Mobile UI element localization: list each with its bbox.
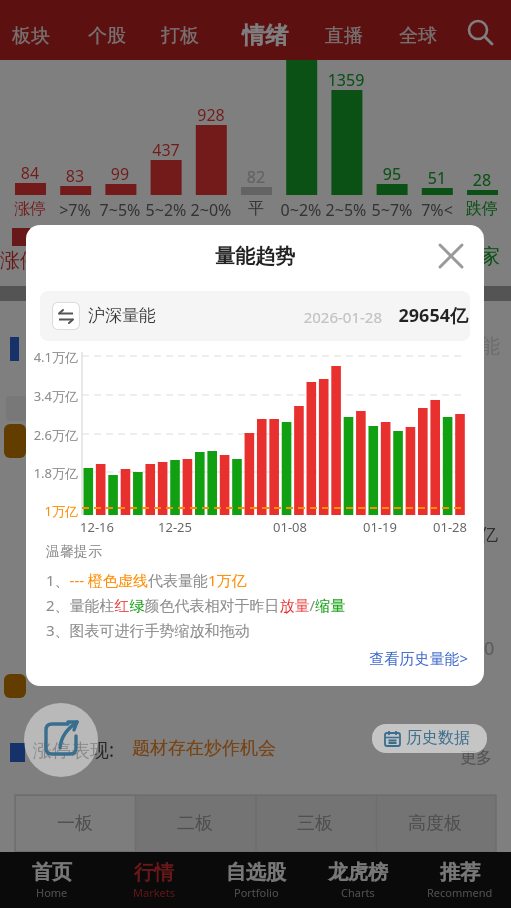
staticText: 二板	[177, 812, 213, 835]
staticText: 82	[226, 166, 286, 188]
staticText: 更多	[460, 748, 510, 768]
staticText: 全球	[399, 24, 437, 48]
staticText: 自选股	[226, 860, 286, 885]
staticText: 亿	[480, 524, 510, 547]
staticText: 一板	[57, 812, 93, 835]
staticText: 3.4万亿	[26, 387, 78, 405]
button[interactable]: 三板	[255, 795, 375, 852]
button[interactable]	[424, 230, 480, 286]
button[interactable]: 自选股	[205, 852, 307, 908]
button[interactable]: 一板	[15, 795, 135, 852]
staticText: Markets	[133, 885, 176, 900]
button[interactable]: 高度板	[375, 795, 495, 852]
staticText: 7~5%	[90, 199, 150, 221]
button[interactable]: 打板	[150, 20, 210, 52]
button[interactable]	[460, 12, 500, 52]
staticText: 2026-01-28	[282, 307, 382, 327]
staticText: 情绪	[242, 21, 288, 50]
button[interactable]: 题材存在炒作机会	[132, 737, 352, 760]
staticText: 12-16	[67, 518, 127, 536]
staticText: 0~2%	[271, 199, 331, 221]
staticText: 查看历史量能>	[346, 648, 468, 668]
button[interactable]: 首页	[0, 852, 103, 908]
button[interactable]: 情绪	[229, 15, 301, 55]
button[interactable]: 历史数据	[372, 724, 487, 753]
staticText: 沪深量能	[88, 305, 208, 326]
staticText: 0	[484, 636, 511, 661]
staticText: 推荐	[440, 860, 480, 885]
staticText: 温馨提示	[46, 543, 246, 561]
staticText: 高度板	[408, 812, 462, 835]
staticText: 2~0%	[181, 199, 241, 221]
staticText: 行情	[134, 860, 174, 885]
staticText: 4.1万亿	[26, 348, 78, 366]
staticText: 84	[0, 162, 60, 184]
staticText: 直播	[325, 24, 363, 48]
staticText: 量能趋势	[26, 244, 484, 269]
staticText: 跌停	[452, 199, 511, 219]
staticText: 12-25	[145, 518, 205, 536]
staticText: 2、量能柱红绿颜色代表相对于昨日放量/缩量	[46, 595, 346, 615]
staticText: 3、图表可进行手势缩放和拖动	[46, 620, 446, 640]
button[interactable]: 推荐	[409, 852, 511, 908]
staticText: 涨停	[0, 199, 60, 219]
staticText: 1359	[316, 69, 376, 91]
staticText: 437	[136, 139, 196, 161]
button[interactable]: 沪深量能	[40, 291, 470, 341]
staticText: 99	[90, 163, 150, 185]
staticText: 01-28	[420, 518, 480, 536]
staticText: 板块	[12, 24, 50, 48]
staticText: 95	[362, 163, 422, 185]
button[interactable]: 直播	[314, 20, 374, 52]
staticText: >7%	[45, 199, 105, 221]
staticText: 家	[480, 244, 510, 269]
staticText: 首页	[32, 860, 72, 885]
staticText: 能	[480, 334, 510, 359]
button[interactable]: 全球	[388, 20, 448, 52]
staticText: Recommend	[427, 885, 493, 900]
staticText: 1、--- 橙色虚线代表量能1万亿	[46, 570, 247, 590]
button[interactable]: 查看历史量能>	[346, 648, 468, 674]
staticText: 2.6万亿	[26, 426, 78, 444]
staticText: 01-08	[260, 518, 320, 536]
staticText: 1.8万亿	[26, 464, 78, 482]
staticText: 三板	[297, 812, 333, 835]
button[interactable]: 二板	[135, 795, 255, 852]
staticText: 928	[181, 104, 241, 126]
staticText: 5~7%	[362, 199, 422, 221]
staticText: 5~2%	[136, 199, 196, 221]
button[interactable]: 板块	[1, 20, 61, 52]
staticText: 83	[45, 165, 105, 187]
staticText: 历史数据	[406, 728, 486, 748]
staticText: 龙虎榜	[328, 860, 388, 885]
staticText: 2~5%	[316, 199, 376, 221]
staticText: 涨停	[0, 248, 40, 273]
button[interactable]: 行情	[103, 852, 205, 908]
button[interactable]	[24, 703, 98, 777]
staticText: 7%<	[407, 199, 467, 221]
button[interactable]: 个股	[77, 20, 137, 52]
staticText: 01-19	[350, 518, 410, 536]
staticText: Home	[36, 885, 68, 900]
staticText: Charts	[341, 885, 375, 900]
staticText: 28	[452, 169, 511, 191]
staticText: 51	[407, 167, 467, 189]
staticText: 29654亿	[390, 303, 468, 328]
staticText: 涨停表现:	[33, 737, 153, 763]
staticText: 个股	[88, 24, 126, 48]
staticText: 1万亿	[26, 502, 78, 520]
staticText: 打板	[161, 24, 199, 48]
staticText: 平	[226, 199, 286, 219]
staticText: 题材存在炒作机会	[132, 737, 276, 760]
staticText: Portfolio	[234, 885, 279, 900]
button[interactable]: 龙虎榜	[307, 852, 409, 908]
